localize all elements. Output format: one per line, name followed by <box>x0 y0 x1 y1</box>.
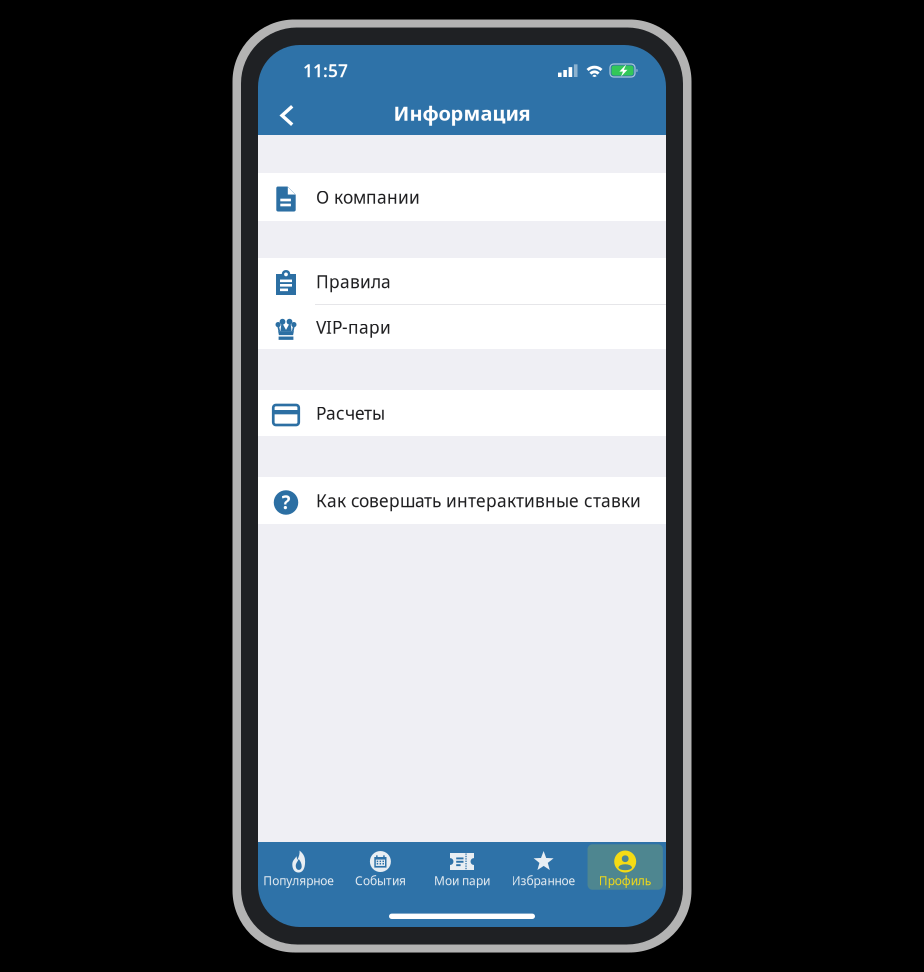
button[interactable]: Правила <box>258 258 666 305</box>
staticText: 11:57 <box>303 59 348 82</box>
staticText: Как совершать интерактивные ставки <box>316 489 641 512</box>
staticText: События <box>355 872 406 888</box>
button[interactable]: Популярное <box>258 842 340 892</box>
button[interactable]: Избранное <box>503 842 584 892</box>
button[interactable]: Мои пари <box>421 842 503 892</box>
button[interactable]: ? <box>258 477 666 524</box>
button[interactable]: Расчеты <box>258 390 666 436</box>
staticText: Мои пари <box>434 872 490 888</box>
button[interactable]: Профиль <box>584 842 666 892</box>
staticText: Профиль <box>599 872 652 888</box>
staticText: Информация <box>393 100 530 126</box>
staticText: О компании <box>316 185 420 208</box>
button[interactable]: О компании <box>258 173 666 221</box>
staticText: VIP-пари <box>316 315 391 338</box>
button[interactable]: События <box>340 842 421 892</box>
staticText: Расчеты <box>316 401 385 424</box>
button[interactable]: VIP-пари <box>258 305 666 349</box>
staticText: ? <box>281 490 290 514</box>
staticText: Правила <box>316 270 391 293</box>
button[interactable]: Back <box>258 90 309 135</box>
staticText: Избранное <box>512 872 576 888</box>
staticText: Популярное <box>263 872 334 888</box>
